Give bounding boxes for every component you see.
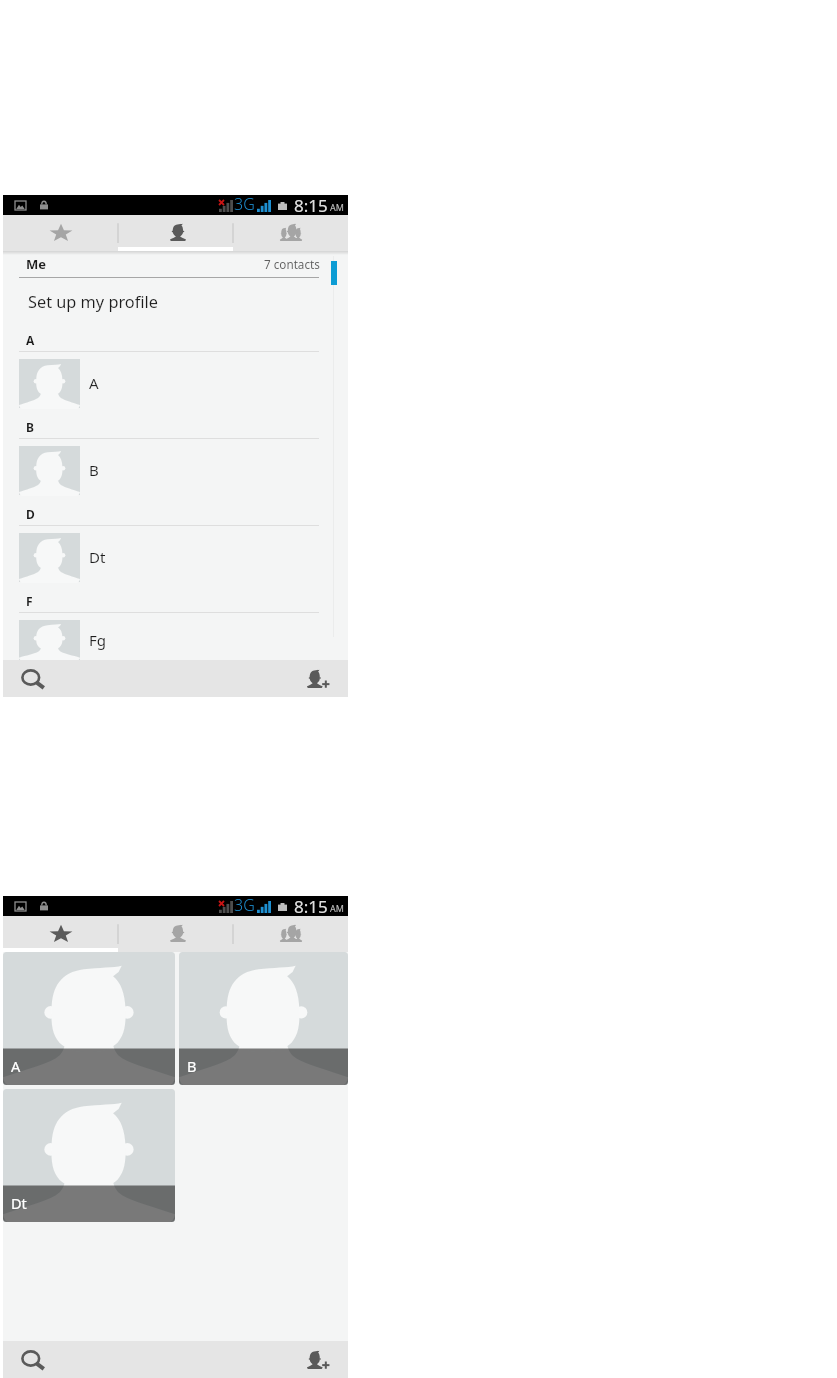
button[interactable]: Fg bbox=[3, 613, 348, 660]
button[interactable]: B bbox=[3, 439, 348, 495]
staticText: 3G bbox=[234, 195, 255, 213]
staticText: 8:15 bbox=[294, 195, 328, 214]
button[interactable]: All contacts bbox=[118, 916, 233, 952]
button[interactable]: Set up my profile bbox=[3, 278, 348, 321]
button[interactable]: Groups bbox=[233, 215, 348, 251]
staticText: B bbox=[89, 460, 99, 480]
button[interactable]: Dt bbox=[3, 526, 348, 582]
staticText: Set up my profile bbox=[28, 291, 158, 313]
staticText: A bbox=[26, 332, 35, 348]
staticText: Me bbox=[26, 255, 47, 273]
button[interactable]: Favourites bbox=[3, 215, 118, 251]
staticText: D bbox=[26, 506, 35, 522]
staticText: A bbox=[89, 373, 99, 393]
button[interactable]: Add contact bbox=[303, 664, 333, 694]
button[interactable]: All contacts bbox=[118, 215, 233, 251]
staticText: B bbox=[26, 419, 34, 435]
staticText: 3G bbox=[234, 896, 255, 914]
staticText: Dt bbox=[89, 547, 106, 567]
staticText: 8:15 bbox=[294, 896, 328, 915]
button[interactable]: A bbox=[3, 952, 175, 1085]
button[interactable]: B bbox=[179, 952, 348, 1085]
staticText: AM bbox=[330, 201, 344, 213]
staticText: Dt bbox=[11, 1193, 27, 1213]
staticText: B bbox=[187, 1056, 197, 1076]
staticText: 7 contacts bbox=[264, 256, 320, 272]
button[interactable]: Search bbox=[16, 662, 50, 696]
staticText: F bbox=[26, 593, 33, 609]
button[interactable]: Groups bbox=[233, 916, 348, 952]
button[interactable]: Favourites bbox=[3, 916, 118, 952]
button[interactable]: Me bbox=[3, 251, 348, 277]
button[interactable]: Dt bbox=[3, 1089, 175, 1222]
staticText: AM bbox=[330, 902, 344, 914]
button[interactable]: Add contact bbox=[303, 1345, 333, 1375]
staticText: A bbox=[11, 1056, 21, 1076]
button[interactable]: Search bbox=[16, 1343, 50, 1377]
staticText: Fg bbox=[89, 630, 107, 650]
button[interactable]: A bbox=[3, 352, 348, 408]
